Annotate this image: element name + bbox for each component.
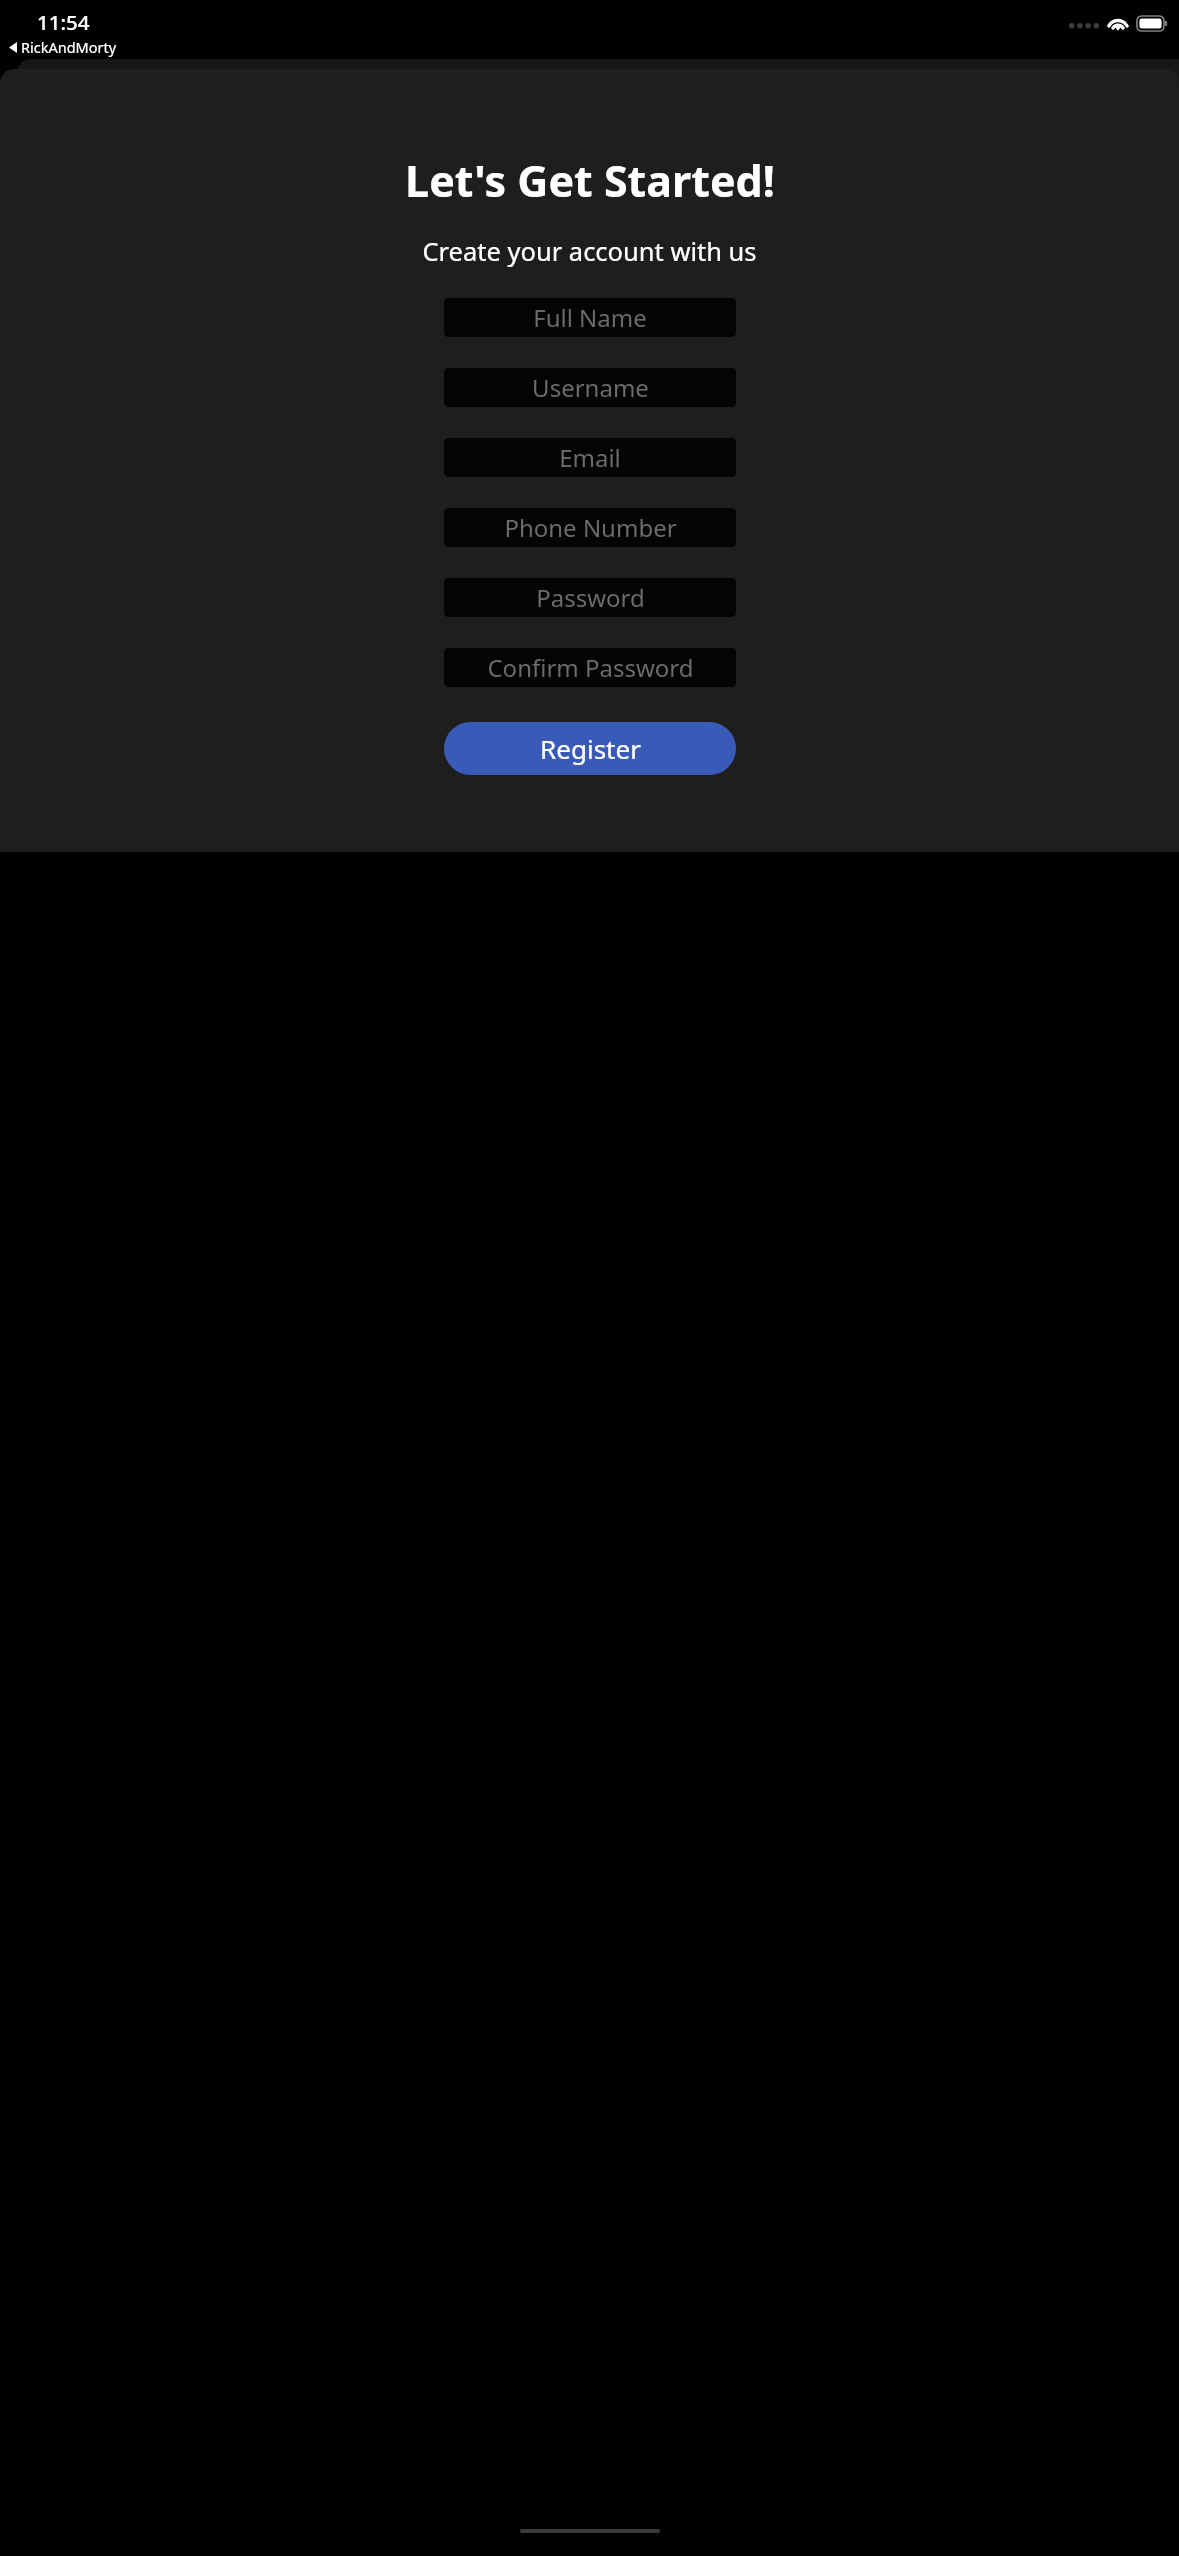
staticText: 11:54: [37, 8, 90, 36]
button[interactable]: Register: [444, 722, 736, 775]
button[interactable]: Username: [444, 368, 736, 407]
staticText: Username: [532, 371, 649, 404]
staticText: RickAndMorty: [21, 37, 117, 57]
staticText: Phone Number: [504, 511, 677, 544]
button[interactable]: Full Name: [444, 298, 736, 337]
button[interactable]: Phone Number: [444, 508, 736, 547]
button[interactable]: Email: [444, 438, 736, 477]
staticText: Create your account with us: [422, 234, 757, 269]
staticText: Email: [559, 441, 621, 474]
staticText: Full Name: [533, 301, 647, 334]
staticText: Let's Get Started!: [405, 151, 775, 210]
staticText: Register: [540, 731, 641, 766]
button[interactable]: Confirm Password: [444, 648, 736, 687]
staticText: Confirm Password: [487, 651, 694, 684]
button[interactable]: Back to RickAndMorty: [9, 37, 117, 57]
button[interactable]: Password: [444, 578, 736, 617]
staticText: Password: [536, 581, 645, 614]
